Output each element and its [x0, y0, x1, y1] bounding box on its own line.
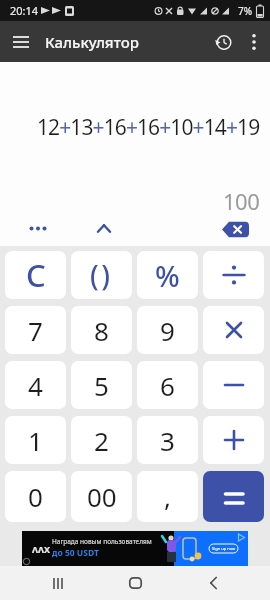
staticText: 0 [28, 479, 43, 514]
button[interactable]: 3 [137, 416, 198, 464]
button[interactable] [7, 28, 35, 56]
staticText: , [164, 479, 171, 514]
button[interactable] [203, 471, 264, 522]
button[interactable] [209, 28, 237, 56]
button[interactable] [241, 29, 267, 55]
staticText: 7 [28, 313, 43, 348]
button[interactable]: 2 [71, 416, 132, 464]
staticText: 100 [223, 186, 260, 216]
staticText: 6 [160, 368, 175, 403]
button[interactable]: % [137, 251, 198, 299]
staticText: ΛΛX [32, 543, 51, 555]
staticText: C [26, 254, 46, 296]
button[interactable] [22, 214, 54, 242]
staticText: 9 [160, 313, 175, 348]
button[interactable]: 00 [71, 471, 132, 522]
button[interactable]: 1 [5, 416, 66, 464]
staticText: 3 [160, 423, 175, 458]
button[interactable]: 0 [5, 471, 66, 522]
staticText: Награда новым пользователям [52, 537, 152, 546]
button[interactable]: 6 [137, 361, 198, 409]
button[interactable] [115, 568, 155, 598]
button[interactable] [203, 361, 264, 409]
button[interactable]: , [137, 471, 198, 522]
button[interactable] [90, 214, 118, 242]
button[interactable] [217, 216, 253, 242]
staticText: до 50 USDT [52, 547, 99, 559]
button[interactable]: 7 [5, 306, 66, 354]
button[interactable] [203, 416, 264, 464]
button[interactable] [193, 568, 233, 598]
staticText: () [90, 256, 113, 294]
staticText: 2 [94, 423, 109, 458]
staticText: % [155, 256, 180, 295]
staticText: 5 [94, 368, 109, 403]
button[interactable]: 9 [137, 306, 198, 354]
button[interactable] [203, 251, 264, 299]
staticText: Калькулятор [45, 32, 139, 52]
staticText: 7% [238, 4, 253, 18]
button[interactable] [38, 568, 78, 598]
staticText: Sign up now [212, 546, 236, 551]
staticText: 4 [28, 368, 43, 403]
button[interactable]: 5 [71, 361, 132, 409]
button[interactable]: 8 [71, 306, 132, 354]
button[interactable]: ΛΛX [22, 531, 248, 566]
staticText: 8 [94, 313, 109, 348]
staticText: 20:14 [10, 3, 39, 18]
button[interactable] [203, 306, 264, 354]
button[interactable]: () [71, 251, 132, 299]
staticText: 00 [87, 479, 117, 514]
button[interactable]: 4 [5, 361, 66, 409]
staticText: 12+13+16+16+10+14+19 [37, 113, 260, 142]
button[interactable]: C [5, 251, 66, 299]
staticText: 1 [28, 423, 43, 458]
